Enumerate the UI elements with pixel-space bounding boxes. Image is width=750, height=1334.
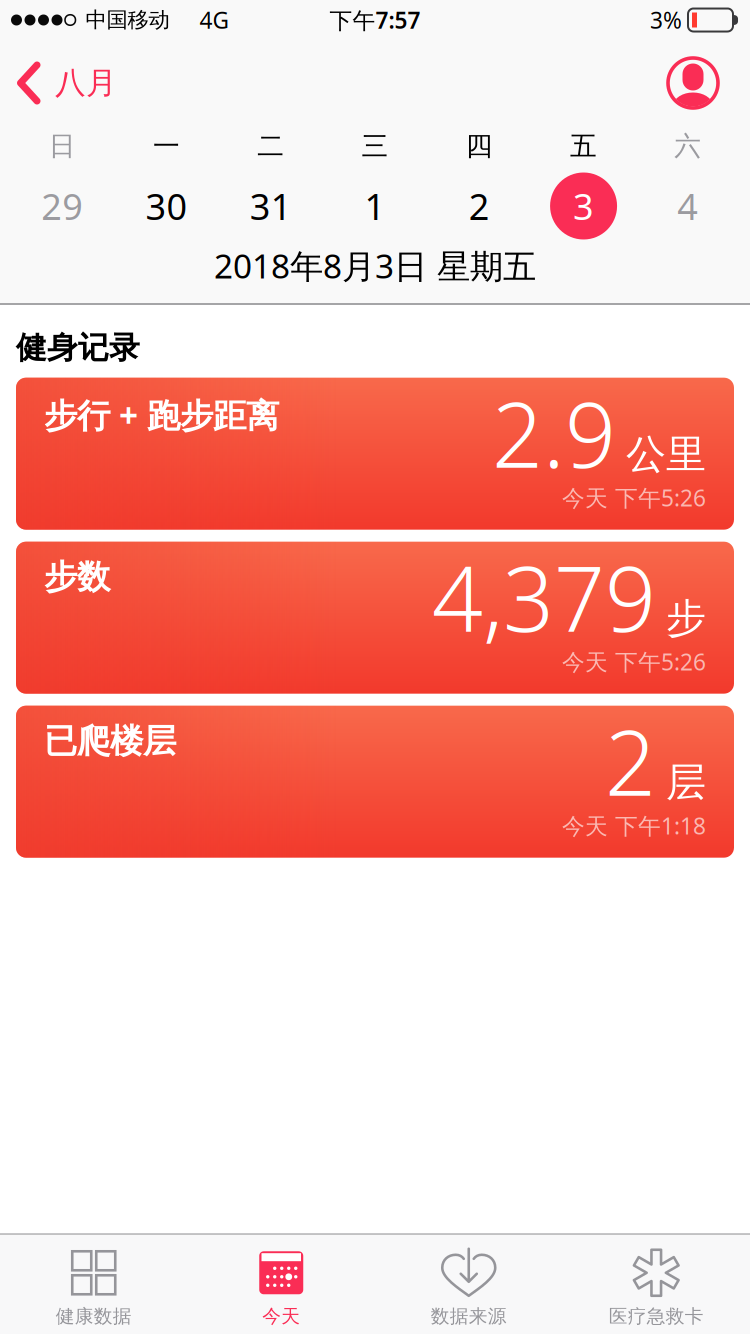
staticText: 2018年8月3日 星期五	[214, 243, 536, 288]
staticText: 2	[469, 182, 490, 230]
staticText: 今天	[262, 1305, 300, 1328]
button[interactable]: 健康数据	[0, 1251, 187, 1328]
staticText: 30	[145, 182, 187, 230]
staticText: 3	[573, 182, 594, 230]
staticText: 4,379	[432, 538, 656, 656]
staticText: 2	[605, 702, 656, 820]
staticText: 4G	[199, 5, 229, 35]
staticText: 3%	[650, 5, 682, 35]
staticText: 层	[666, 758, 706, 807]
staticText: 数据来源	[431, 1305, 507, 1328]
staticText: 1	[364, 182, 385, 230]
button[interactable]: 2	[427, 164, 531, 248]
staticText: 今天 下午5:26	[562, 483, 706, 513]
button[interactable]: 29	[10, 164, 114, 248]
staticText: 已爬楼层	[44, 721, 176, 762]
staticText: 医疗急救卡	[609, 1305, 704, 1328]
button[interactable]: 1	[323, 164, 427, 248]
staticText: 29	[41, 182, 83, 230]
staticText: 二	[257, 130, 284, 162]
staticText: 一	[153, 130, 180, 162]
staticText: 步	[666, 594, 706, 643]
staticText: 今天 下午1:18	[562, 811, 706, 841]
staticText: 下午7:57	[329, 5, 420, 35]
staticText: 健身记录	[16, 329, 140, 367]
staticText: 八月	[55, 64, 117, 102]
staticText: 步数	[44, 557, 110, 598]
button[interactable]: 数据来源	[375, 1251, 562, 1328]
staticText: 四	[466, 130, 493, 162]
staticText: 五	[570, 130, 597, 162]
button[interactable]: 个人资料	[665, 55, 721, 111]
button[interactable]: 31	[219, 164, 323, 248]
button[interactable]: 步数	[16, 542, 734, 694]
staticText: 2.9	[492, 374, 616, 492]
staticText: 步行 + 跑步距离	[44, 393, 279, 437]
staticText: 今天 下午5:26	[562, 647, 706, 677]
staticText: 日	[49, 130, 76, 162]
button[interactable]: 今天	[187, 1251, 375, 1328]
button[interactable]: 返回 八月	[17, 63, 117, 103]
staticText: 31	[250, 182, 292, 230]
button[interactable]: 4	[636, 164, 740, 248]
button[interactable]: 3	[531, 164, 636, 248]
button[interactable]: 已爬楼层	[16, 706, 734, 858]
staticText: 4	[677, 182, 698, 230]
staticText: 六	[674, 130, 701, 162]
staticText: 健康数据	[56, 1305, 132, 1328]
staticText: 公里	[626, 430, 706, 479]
button[interactable]: 步行 + 跑步距离	[16, 378, 734, 530]
button[interactable]: 医疗急救卡	[562, 1251, 750, 1328]
button[interactable]: 30	[114, 164, 219, 248]
staticText: 三	[361, 130, 388, 162]
staticText: 中国移动	[85, 7, 169, 33]
